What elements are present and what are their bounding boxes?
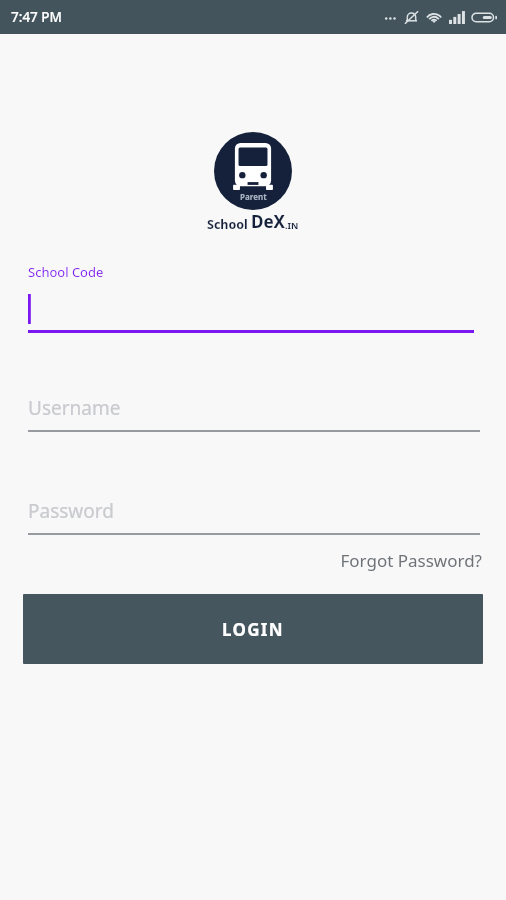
button[interactable]: Username [28,395,480,432]
staticText: School [207,216,248,233]
staticText: DeX [251,210,285,233]
staticText: .IN [285,219,299,231]
staticText: Parent [240,191,267,202]
button[interactable]: LOGIN [23,594,483,664]
staticText: Username [28,395,121,421]
button[interactable]: School Code [28,263,474,333]
staticText: Password [28,498,114,524]
staticText: LOGIN [222,618,284,641]
button[interactable]: Password [28,498,480,535]
staticText: 7:47 PM [11,8,62,26]
staticText: School Code [28,263,104,281]
staticText: Forgot Password? [340,549,482,572]
button[interactable]: Forgot Password? [336,545,486,576]
